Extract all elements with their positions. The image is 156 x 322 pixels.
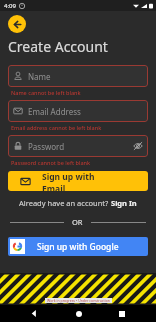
button[interactable]: Email Address bbox=[8, 100, 148, 122]
staticText: Sign up with Google bbox=[37, 241, 119, 253]
staticText: Sign up with Email bbox=[42, 171, 114, 191]
staticText: Already have an account? bbox=[19, 198, 111, 208]
staticText: Create Account bbox=[8, 37, 108, 56]
staticText: Email Address bbox=[28, 106, 81, 117]
staticText: Password bbox=[28, 141, 65, 152]
staticText: Email address cannot be left blank bbox=[11, 124, 102, 131]
button[interactable]: Show password bbox=[128, 141, 148, 151]
button[interactable]: Sign up with Email bbox=[8, 171, 148, 191]
staticText: OR bbox=[72, 217, 83, 227]
button[interactable]: Recents bbox=[113, 305, 130, 322]
staticText: Sign In bbox=[111, 198, 137, 208]
button[interactable]: Name bbox=[8, 65, 148, 87]
staticText: Name cannot be left blank bbox=[11, 89, 81, 96]
button[interactable]: Password bbox=[8, 135, 148, 157]
button[interactable]: Home bbox=[70, 305, 87, 322]
button[interactable]: Back bbox=[26, 305, 43, 322]
button[interactable]: Sign up with Google bbox=[8, 237, 148, 256]
staticText: Work in progress • Under construction bbox=[47, 298, 110, 303]
staticText: Name bbox=[28, 71, 51, 82]
staticText: 4:09 bbox=[4, 2, 16, 10]
button[interactable]: Already have an account? bbox=[0, 198, 156, 208]
button[interactable]: Back bbox=[8, 15, 26, 33]
staticText: Password cannot be left blank bbox=[11, 159, 91, 166]
